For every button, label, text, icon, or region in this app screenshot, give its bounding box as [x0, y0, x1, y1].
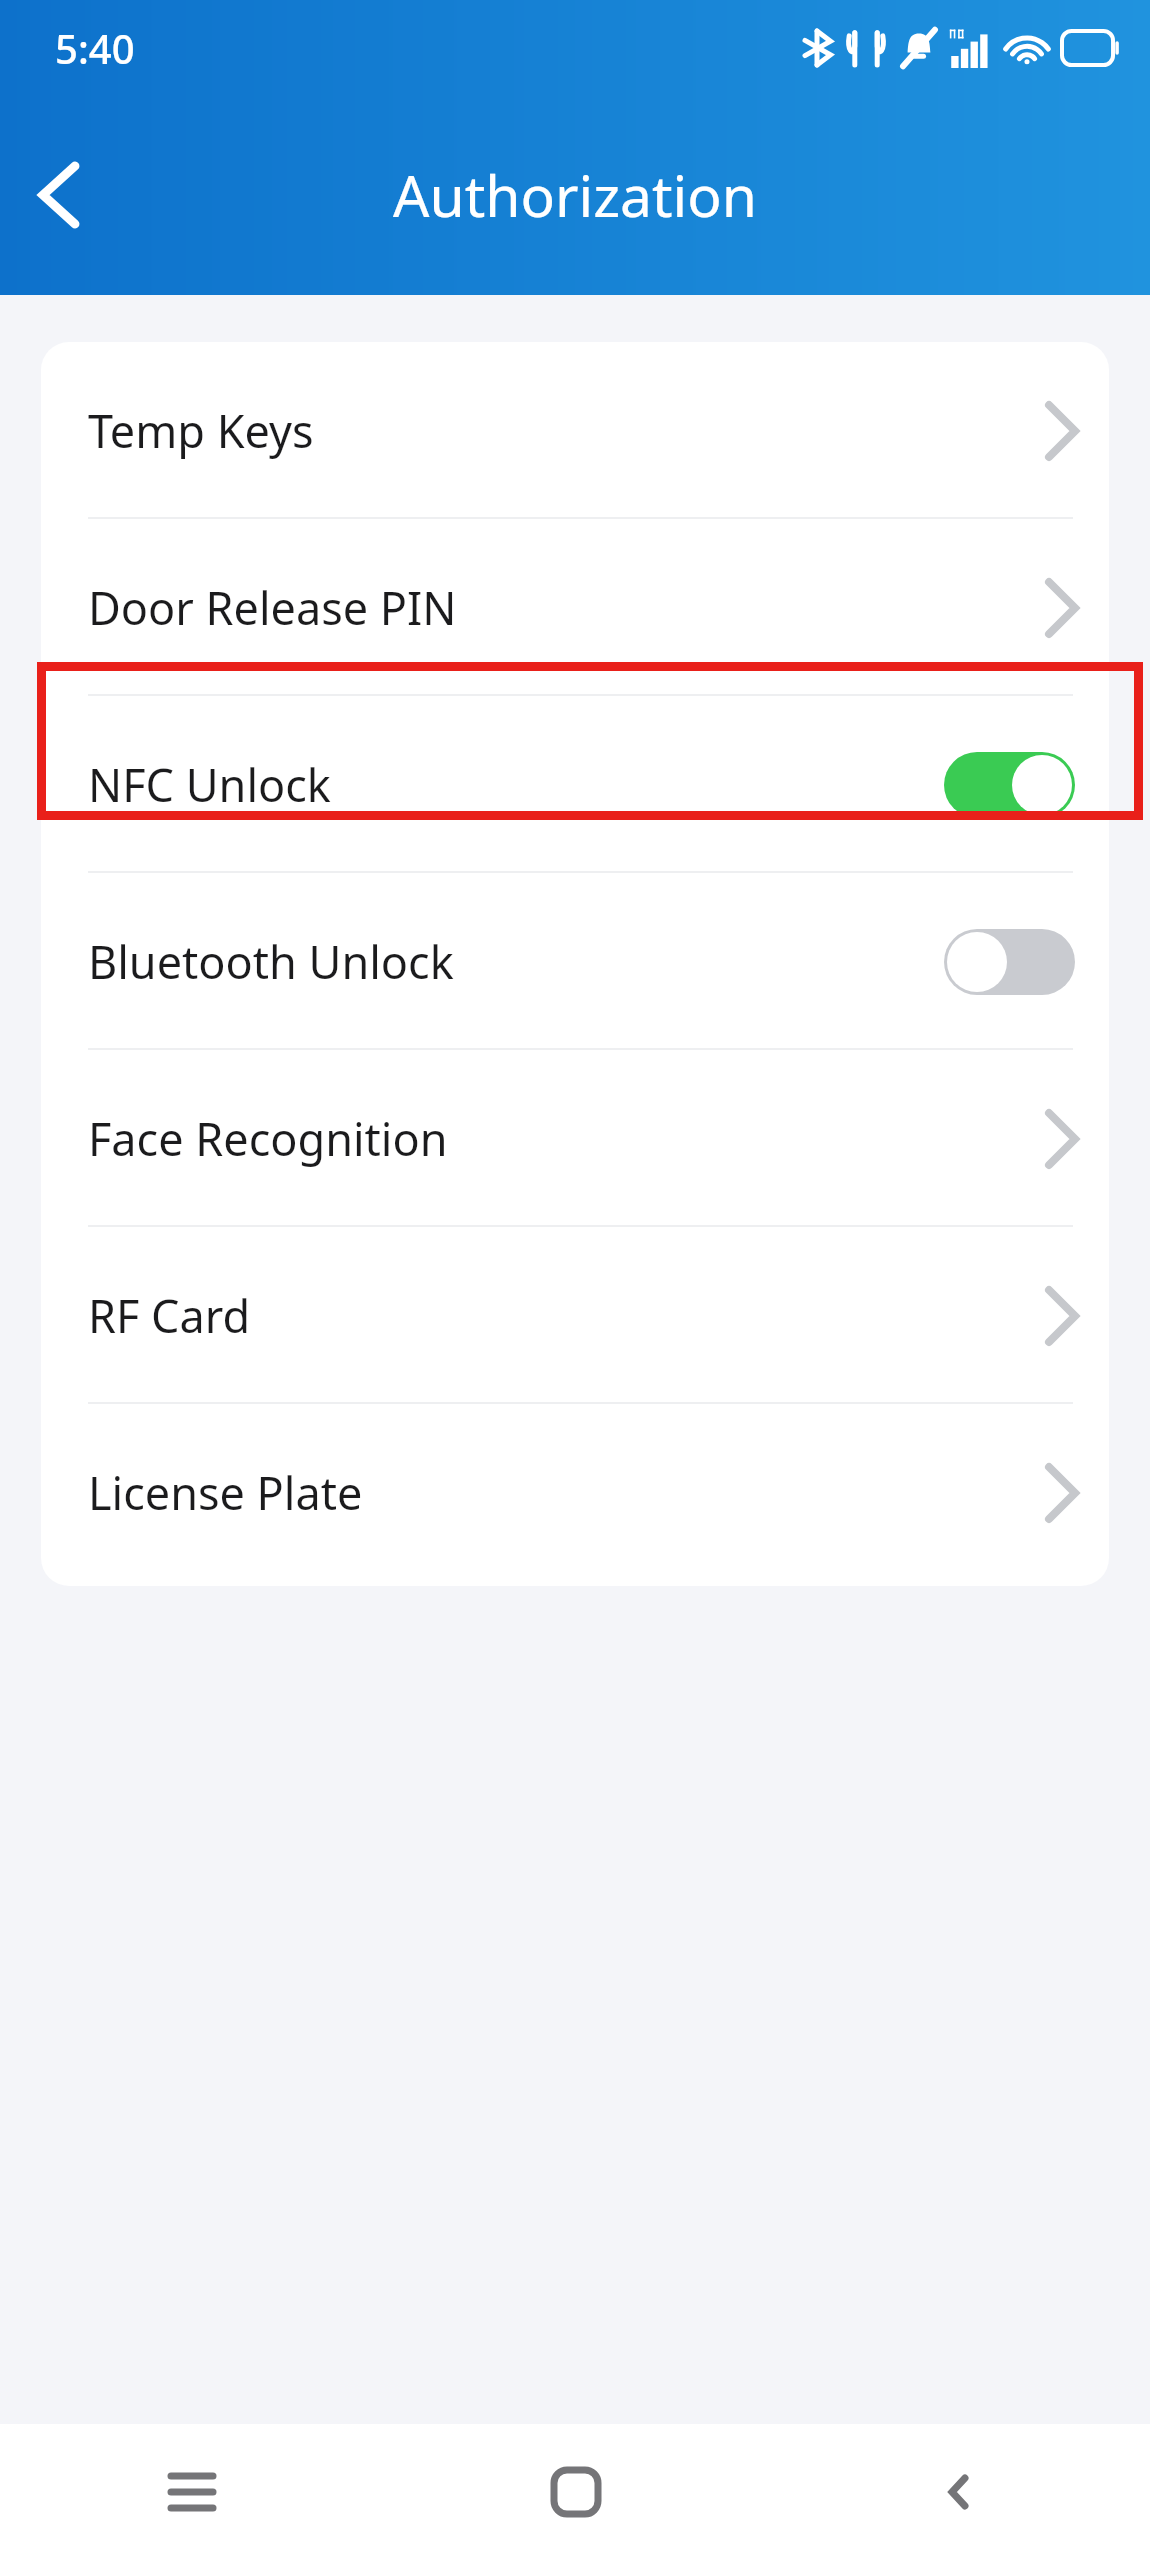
button[interactable]: Back — [767, 2424, 1150, 2560]
button[interactable]: NFC Unlock — [41, 696, 1109, 873]
button[interactable]: Recent apps — [0, 2424, 384, 2560]
button[interactable]: Door Release PIN — [41, 519, 1109, 696]
staticText: Face Recognition — [88, 1108, 448, 1169]
staticText: Bluetooth Unlock — [88, 931, 454, 992]
button[interactable]: Home — [384, 2424, 767, 2560]
button[interactable]: Temp Keys — [41, 342, 1109, 519]
button[interactable]: Back — [0, 136, 118, 254]
staticText: Authorization — [393, 156, 757, 234]
staticText: NFC Unlock — [88, 754, 331, 815]
staticText: Temp Keys — [88, 400, 314, 461]
staticText: License Plate — [88, 1462, 363, 1523]
staticText: Door Release PIN — [88, 577, 457, 638]
button[interactable]: RF Card — [41, 1227, 1109, 1404]
button[interactable]: Face Recognition — [41, 1050, 1109, 1227]
staticText: RF Card — [88, 1285, 251, 1346]
button[interactable]: Bluetooth Unlock — [41, 873, 1109, 1050]
staticText: 5:40 — [55, 21, 135, 75]
button[interactable]: License Plate — [41, 1404, 1109, 1581]
